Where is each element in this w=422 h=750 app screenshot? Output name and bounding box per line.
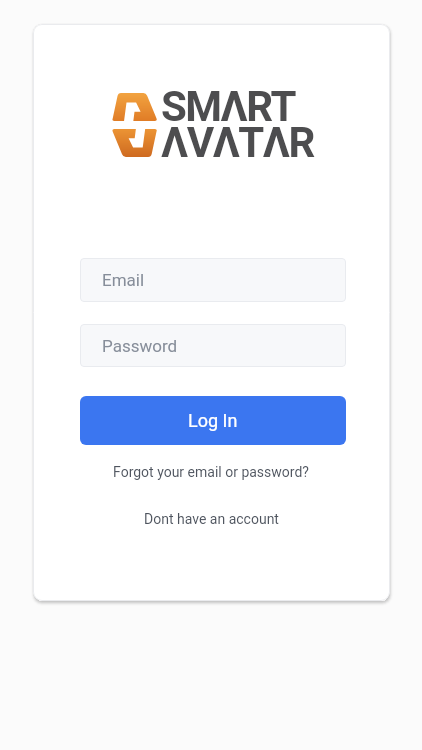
staticText: Log In	[188, 410, 238, 431]
staticText: ΛVΛTΛR	[161, 118, 314, 167]
staticText: Email	[102, 270, 145, 290]
button[interactable]: Log In	[80, 396, 346, 445]
button[interactable]: Dont have an account	[144, 511, 279, 527]
staticText: SMΛRT	[161, 82, 296, 131]
button[interactable]: Email	[80, 258, 346, 302]
button[interactable]: Password	[80, 324, 346, 367]
button[interactable]: Forgot your email or password?	[113, 464, 309, 480]
staticText: Password	[102, 336, 178, 356]
